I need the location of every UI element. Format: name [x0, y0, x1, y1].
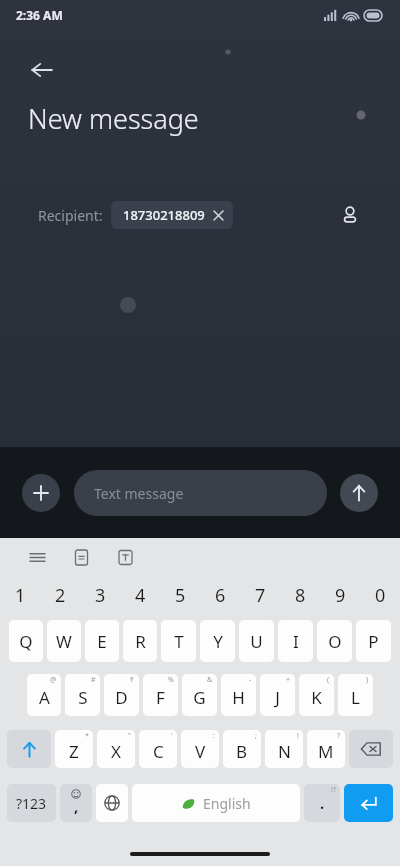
button[interactable]: Send — [340, 474, 378, 512]
button[interactable]: !? — [304, 784, 340, 822]
staticText: Q — [19, 630, 33, 653]
staticText: S — [78, 686, 88, 709]
staticText: I — [293, 630, 299, 653]
staticText: ) — [366, 675, 369, 685]
button[interactable]: Change language — [96, 784, 128, 822]
staticText: + — [286, 675, 291, 685]
staticText: G — [193, 686, 206, 709]
staticText: ; — [255, 731, 257, 741]
button[interactable]: 1 — [0, 576, 40, 614]
staticText: !? — [331, 785, 336, 795]
staticText: New message — [28, 100, 199, 137]
staticText: R — [135, 630, 146, 653]
button[interactable]: 3 — [80, 576, 120, 614]
button[interactable]: Back — [20, 48, 64, 92]
button[interactable]: R — [123, 620, 157, 662]
button[interactable]: 6 — [200, 576, 240, 614]
staticText: Z — [69, 740, 79, 763]
button[interactable]: 5 — [160, 576, 200, 614]
staticText: X — [111, 740, 121, 763]
staticText: J — [275, 686, 280, 709]
staticText: 5 — [175, 583, 186, 608]
button[interactable]: 9 — [320, 576, 360, 614]
staticText: 3 — [95, 583, 106, 608]
staticText: D — [115, 686, 128, 709]
button[interactable]: " — [97, 730, 135, 768]
staticText: V — [195, 740, 206, 763]
button[interactable]: Text formatting — [110, 542, 140, 572]
staticText: 4 — [135, 583, 146, 608]
staticText: % — [168, 675, 174, 685]
button[interactable]: Add attachment — [22, 474, 60, 512]
staticText: # — [91, 675, 96, 685]
button[interactable]: Text message — [74, 470, 327, 516]
staticText: F — [156, 686, 165, 709]
button[interactable]: + — [260, 674, 295, 716]
staticText: Y — [213, 630, 223, 653]
button[interactable]: # — [65, 674, 100, 716]
button[interactable]: 4 — [120, 576, 160, 614]
button[interactable]: Shift — [7, 730, 51, 768]
button[interactable]: Emoji and comma — [60, 784, 92, 822]
button[interactable]: 18730218809 — [111, 201, 233, 229]
button[interactable]: Enter — [344, 784, 393, 822]
staticText: ( — [327, 675, 330, 685]
staticText: K — [311, 686, 322, 709]
staticText: " — [128, 731, 131, 741]
staticText: 2 — [55, 583, 66, 608]
button[interactable]: U — [239, 620, 274, 662]
button[interactable]: ?123 — [7, 784, 56, 822]
staticText: English — [203, 794, 251, 813]
staticText: * — [85, 731, 89, 741]
button[interactable]: & — [182, 674, 217, 716]
staticText: 8 — [295, 583, 306, 608]
button[interactable]: P — [356, 620, 391, 662]
button[interactable]: ) — [338, 674, 373, 716]
staticText: 18730218809 — [123, 206, 205, 224]
button[interactable]: 0 — [360, 576, 400, 614]
staticText: . — [320, 793, 325, 813]
button[interactable]: O — [317, 620, 352, 662]
button[interactable]: ' — [139, 730, 177, 768]
button[interactable]: 2 — [40, 576, 80, 614]
button[interactable]: English — [132, 784, 300, 822]
button[interactable]: : — [181, 730, 219, 768]
staticText: ?123 — [16, 794, 47, 813]
staticText: A — [39, 686, 50, 709]
staticText: 0 — [375, 583, 386, 608]
button[interactable]: ₹ — [104, 674, 139, 716]
button[interactable]: Menu — [22, 542, 52, 572]
button[interactable]: ; — [223, 730, 261, 768]
staticText: U — [250, 630, 263, 653]
button[interactable]: I — [278, 620, 313, 662]
button[interactable]: @ — [27, 674, 61, 716]
staticText: 1 — [15, 583, 26, 608]
button[interactable]: Backspace — [349, 730, 393, 768]
button[interactable]: ! — [265, 730, 303, 768]
button[interactable]: 7 — [240, 576, 280, 614]
staticText: N — [278, 740, 291, 763]
button[interactable]: ( — [299, 674, 334, 716]
button[interactable]: % — [143, 674, 178, 716]
staticText: 7 — [255, 583, 266, 608]
button[interactable]: - — [221, 674, 256, 716]
button[interactable]: Q — [9, 620, 43, 662]
staticText: & — [207, 675, 213, 685]
button[interactable]: 8 — [280, 576, 320, 614]
staticText: L — [351, 686, 360, 709]
button[interactable]: * — [55, 730, 93, 768]
button[interactable]: Contacts — [330, 195, 370, 235]
staticText: ₹ — [130, 675, 135, 685]
button[interactable]: Clipboard — [66, 542, 96, 572]
button[interactable]: W — [47, 620, 81, 662]
button[interactable]: ? — [307, 730, 345, 768]
staticText: 9 — [335, 583, 346, 608]
staticText: - — [249, 675, 252, 685]
staticText: @ — [50, 675, 57, 685]
button[interactable]: T — [161, 620, 196, 662]
staticText: O — [328, 630, 342, 653]
staticText: : — [213, 731, 215, 741]
button[interactable]: E — [85, 620, 119, 662]
staticText: P — [368, 630, 379, 653]
button[interactable]: Y — [200, 620, 235, 662]
